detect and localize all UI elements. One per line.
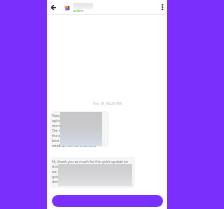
staticText: online [73,8,84,13]
staticText: Hi, thank you so much for the quick upda… [52,159,129,184]
button[interactable]: Yasir, I have checked all of the options… [50,111,109,147]
button[interactable]: Message input [52,195,163,207]
staticText: Feb 19, 05:25 PM [93,101,122,106]
button[interactable]: More options [157,2,167,12]
staticText: Yasir, I have checked all of the options… [52,113,102,147]
button[interactable]: Hi, thank you so much for the quick upda… [50,157,135,188]
button[interactable]: Back [48,2,58,12]
button[interactable]: Profile photo [63,4,71,12]
